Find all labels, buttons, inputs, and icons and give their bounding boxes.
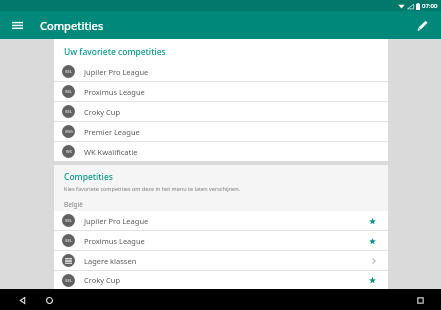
staticText: Croky Cup xyxy=(84,107,120,117)
staticText: België xyxy=(64,200,83,209)
button[interactable]: BEL xyxy=(54,211,388,230)
button[interactable]: BEL xyxy=(54,102,388,121)
button[interactable]: Lagere klassen xyxy=(54,251,388,270)
staticText: WK Kwalificatie xyxy=(84,147,138,157)
staticText: BEL xyxy=(65,238,72,243)
staticText: BEL xyxy=(65,109,72,114)
staticText: Proximus League xyxy=(84,236,145,246)
button[interactable]: Home xyxy=(40,291,58,309)
staticText: ENG xyxy=(65,129,73,134)
staticText: Croky Cup xyxy=(84,275,120,285)
button[interactable]: BEL xyxy=(54,231,388,250)
staticText: WK xyxy=(66,149,72,154)
staticText: Lagere klassen xyxy=(84,256,137,266)
button[interactable]: Toggle favourite Proximus League xyxy=(366,235,378,247)
staticText: Competities xyxy=(40,18,104,33)
staticText: Proximus League xyxy=(84,87,145,97)
button[interactable]: Toggle favourite Croky Cup xyxy=(366,274,378,286)
button[interactable]: Open navigation menu xyxy=(6,14,28,36)
button[interactable]: BEL xyxy=(54,271,388,289)
staticText: Kies favoriete competities om deze in he… xyxy=(64,185,241,192)
button[interactable]: WK xyxy=(54,142,388,161)
staticText: Competities xyxy=(64,171,113,183)
staticText: BEL xyxy=(65,278,72,283)
staticText: 07:00 xyxy=(422,2,438,10)
staticText: Uw favoriete competities xyxy=(64,46,166,58)
staticText: BEL xyxy=(65,69,72,74)
staticText: Premier League xyxy=(84,127,140,137)
staticText: Jupiler Pro League xyxy=(84,216,149,226)
button[interactable]: ENG xyxy=(54,122,388,141)
staticText: BEL xyxy=(65,218,72,223)
button[interactable]: BEL xyxy=(54,82,388,101)
button[interactable]: Toggle favourite Jupiler Pro League xyxy=(366,215,378,227)
button[interactable]: Recent apps xyxy=(411,291,429,309)
button[interactable]: Edit xyxy=(411,14,433,36)
button[interactable]: BEL xyxy=(54,62,388,81)
staticText: Jupiler Pro League xyxy=(84,67,149,77)
button[interactable]: Back xyxy=(13,291,31,309)
staticText: BEL xyxy=(65,89,72,94)
